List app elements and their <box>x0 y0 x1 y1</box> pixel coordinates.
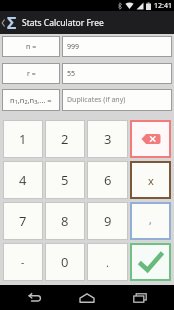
staticText: . <box>106 255 109 270</box>
staticText: n1,n2,n3,... = <box>10 95 52 106</box>
staticText: Duplicates (if any) <box>67 95 126 105</box>
staticText: 3 <box>104 130 112 148</box>
staticText: , <box>149 213 152 227</box>
button[interactable]: x <box>130 161 171 199</box>
staticText: 1 <box>19 130 27 148</box>
button[interactable]: n = <box>2 36 60 57</box>
staticText: 55 <box>67 69 76 79</box>
button[interactable]: 2 <box>45 120 85 158</box>
button[interactable]: 5 <box>45 161 85 199</box>
staticText: 7 <box>19 212 27 230</box>
staticText: 2 <box>61 130 69 148</box>
button[interactable]: 999 <box>62 36 172 57</box>
button[interactable]: 9 <box>87 202 128 240</box>
button[interactable]: 4 <box>3 161 43 199</box>
button[interactable]: , <box>130 202 171 240</box>
button[interactable]: 6 <box>87 161 128 199</box>
staticText: 5 <box>61 171 69 189</box>
button[interactable]: 3 <box>87 120 128 158</box>
button[interactable] <box>130 243 171 281</box>
button[interactable]: 7 <box>3 202 43 240</box>
staticText: 12:41 <box>154 1 172 11</box>
button[interactable]: 8 <box>45 202 85 240</box>
button[interactable] <box>8 285 60 310</box>
button[interactable]: 0 <box>45 243 85 281</box>
staticText: r = <box>27 69 36 79</box>
button[interactable]: r = <box>2 63 60 84</box>
staticText: - <box>21 255 25 269</box>
button[interactable]: 55 <box>62 63 172 84</box>
staticText: 6 <box>104 171 112 189</box>
staticText: x <box>148 173 154 188</box>
staticText: 4 <box>19 171 27 189</box>
button[interactable] <box>113 285 166 310</box>
button[interactable]: . <box>87 243 128 281</box>
button[interactable] <box>60 285 113 310</box>
staticText: 8 <box>61 212 69 230</box>
button[interactable]: - <box>3 243 43 281</box>
staticText: 999 <box>67 42 80 52</box>
staticText: Σ <box>7 12 17 34</box>
staticText: n = <box>26 42 37 52</box>
button[interactable]: 1 <box>3 120 43 158</box>
button[interactable]: Duplicates (if any) <box>62 89 172 111</box>
staticText: 9 <box>104 212 112 230</box>
staticText: 0 <box>61 253 69 271</box>
button[interactable] <box>130 120 171 158</box>
staticText: Stats Calculator Free <box>22 17 104 29</box>
button[interactable]: n1,n2,n3,... = <box>2 89 60 111</box>
